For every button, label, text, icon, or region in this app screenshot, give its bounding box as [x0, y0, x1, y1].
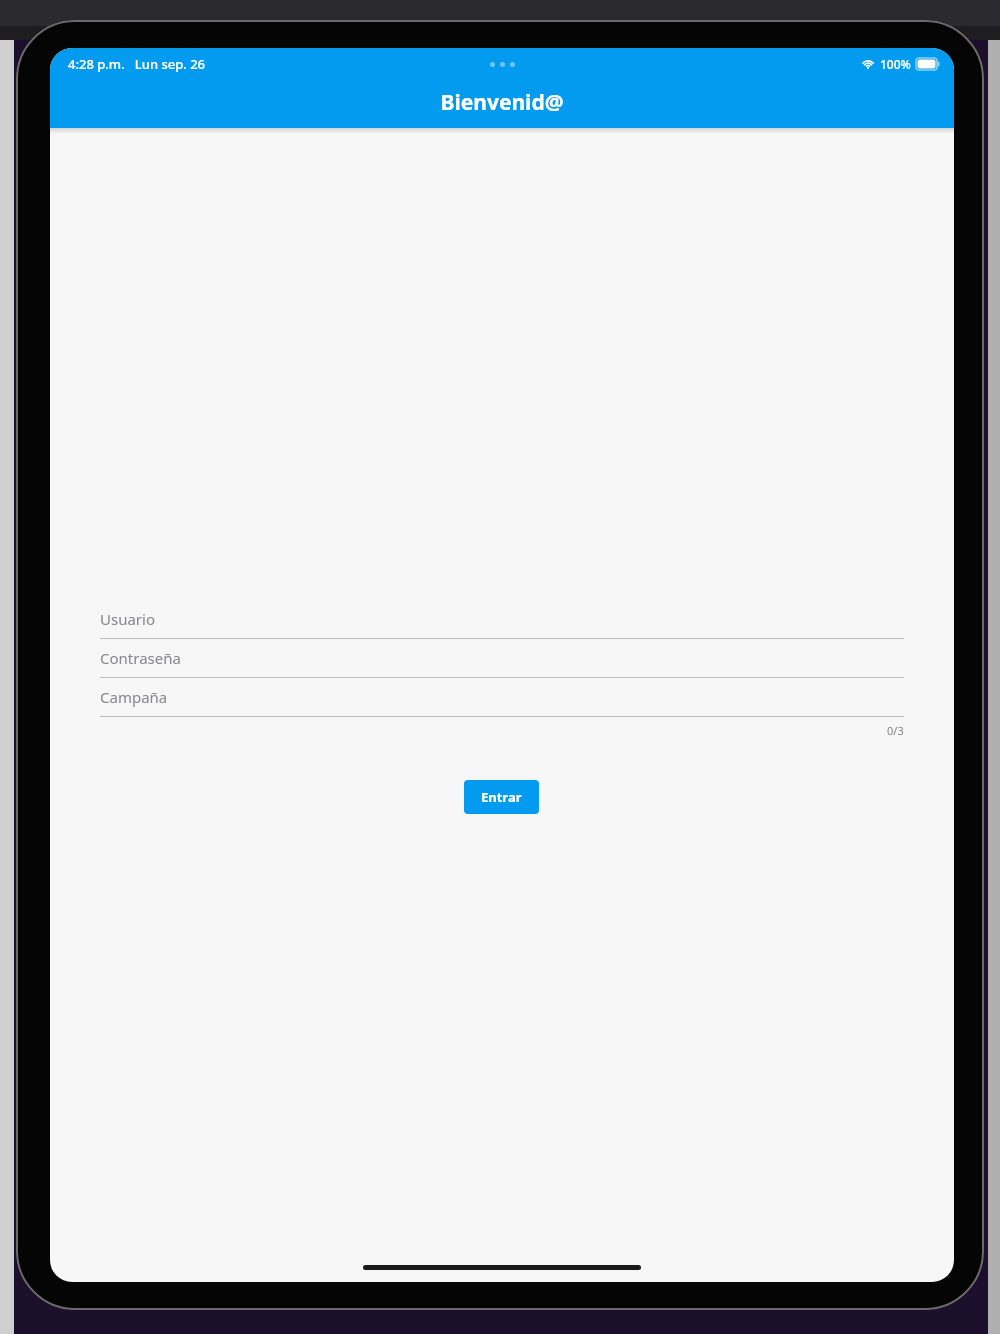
other: Home indicator [363, 1265, 641, 1270]
staticText: appstoreconnect.apple.com/apps/156265716… [220, 21, 712, 39]
button[interactable]: Usuario [100, 600, 904, 639]
button[interactable]: Campaña [100, 678, 904, 717]
staticText: Campaña [100, 687, 168, 707]
staticText: Usuario [100, 609, 155, 629]
staticText: 4:28 p.m. Lun sep. 26 [68, 55, 206, 73]
staticText: Bienvenid@ [440, 88, 564, 117]
button[interactable]: Contraseña [100, 639, 904, 678]
staticText: Entrar [481, 788, 522, 806]
button[interactable]: Entrar [464, 780, 539, 814]
staticText: 0/3 [887, 723, 904, 738]
staticText: Contraseña [100, 648, 181, 668]
staticText: 100% [880, 56, 911, 72]
